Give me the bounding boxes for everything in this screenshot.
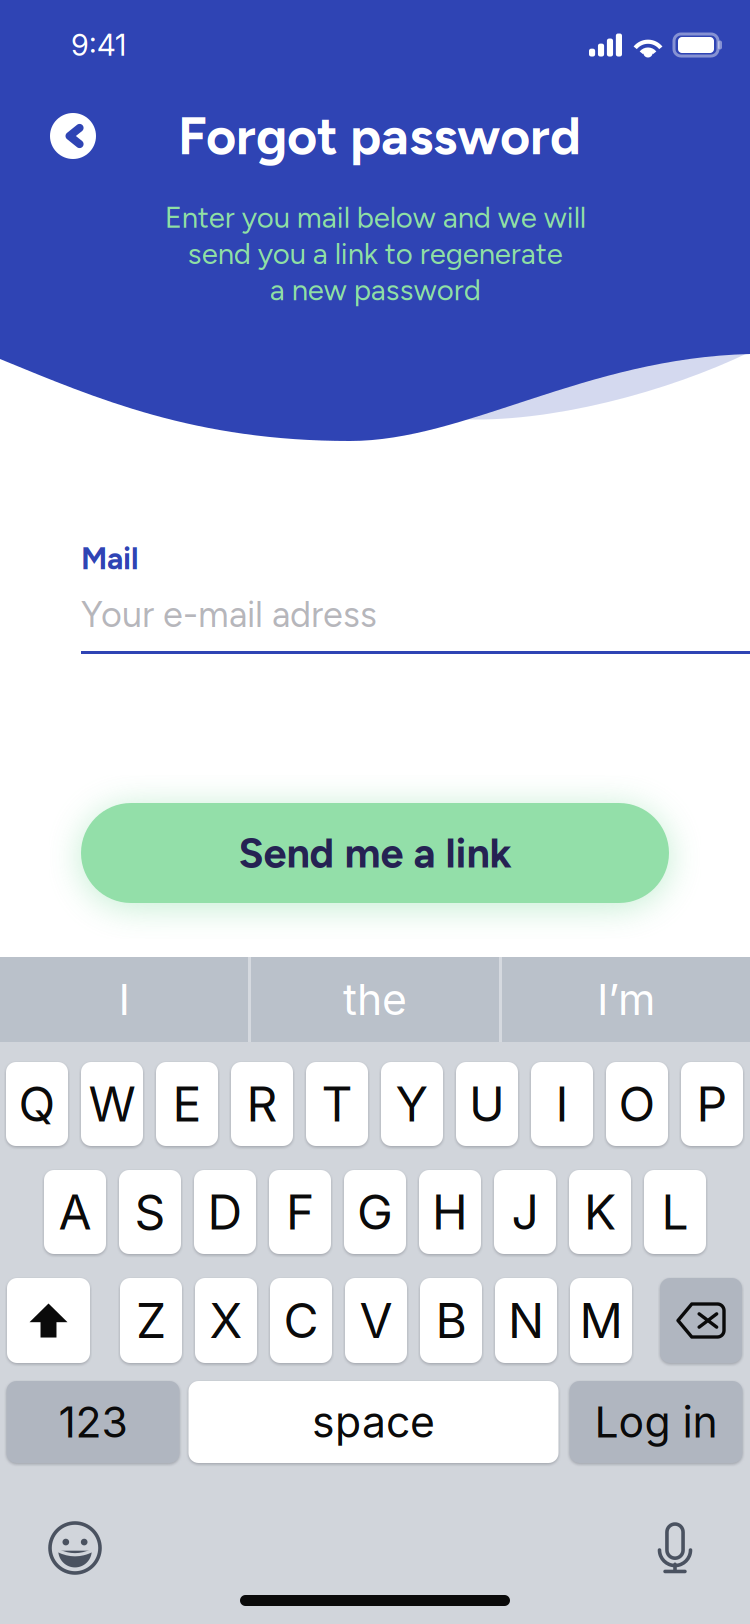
staticText: V (359, 1291, 392, 1350)
staticText: P (696, 1075, 727, 1133)
staticText: O (618, 1075, 655, 1133)
button[interactable]: T (306, 1062, 368, 1146)
staticText: 123 (58, 1396, 127, 1448)
button[interactable]: L (644, 1170, 706, 1254)
button[interactable]: V (345, 1278, 407, 1363)
button[interactable]: F (269, 1170, 331, 1254)
staticText: Enter you mail below and we will send yo… (164, 200, 585, 308)
staticText: F (286, 1183, 314, 1241)
staticText: space (312, 1396, 435, 1448)
button[interactable]: Dictate (653, 1521, 697, 1575)
button[interactable]: space (188, 1381, 558, 1463)
staticText: Q (18, 1075, 55, 1133)
button[interactable]: R (231, 1062, 293, 1146)
staticText: Z (136, 1291, 166, 1350)
staticText: A (58, 1183, 91, 1241)
staticText: I (555, 1075, 568, 1133)
staticText: H (432, 1183, 468, 1241)
button[interactable]: X (195, 1278, 257, 1363)
staticText: Mail (81, 540, 139, 577)
button[interactable]: I (531, 1062, 593, 1146)
button[interactable]: D (194, 1170, 256, 1254)
button[interactable]: Back (50, 113, 96, 159)
staticText: Log in (594, 1396, 717, 1448)
staticText: M (579, 1291, 622, 1350)
button[interactable]: Delete (660, 1278, 742, 1363)
staticText: Send me a link (238, 828, 511, 878)
button[interactable]: Q (6, 1062, 68, 1146)
staticText: 9:41 (71, 27, 126, 63)
staticText: the (343, 974, 407, 1025)
staticText: K (584, 1183, 616, 1241)
staticText: I (118, 974, 129, 1025)
button[interactable]: Log in (569, 1381, 742, 1463)
staticText: T (321, 1075, 352, 1133)
staticText: S (134, 1183, 165, 1241)
button[interactable]: B (420, 1278, 482, 1363)
staticText: R (246, 1075, 277, 1133)
staticText: B (435, 1291, 466, 1350)
button[interactable]: the (251, 957, 499, 1042)
button[interactable]: Send me a link (81, 803, 669, 903)
staticText: C (283, 1291, 318, 1350)
button[interactable]: M (570, 1278, 632, 1363)
button[interactable]: 123 (6, 1381, 179, 1463)
button[interactable]: I’m (502, 957, 750, 1042)
staticText: Your e-mail adress (81, 593, 377, 636)
button[interactable]: K (569, 1170, 631, 1254)
button[interactable]: U (456, 1062, 518, 1146)
button[interactable]: W (81, 1062, 143, 1146)
staticText: Y (395, 1075, 428, 1133)
staticText: E (172, 1075, 201, 1133)
button[interactable]: P (681, 1062, 743, 1146)
button[interactable]: G (344, 1170, 406, 1254)
staticText: I’m (597, 974, 655, 1025)
staticText: Forgot password (178, 105, 581, 167)
button[interactable]: Z (120, 1278, 182, 1363)
button[interactable]: H (419, 1170, 481, 1254)
button[interactable]: A (44, 1170, 106, 1254)
staticText: X (209, 1291, 242, 1350)
button[interactable]: C (270, 1278, 332, 1363)
button[interactable]: S (119, 1170, 181, 1254)
button[interactable]: I (0, 957, 248, 1042)
button[interactable]: Emoji (48, 1521, 102, 1575)
staticText: J (511, 1183, 538, 1241)
staticText: L (661, 1183, 688, 1241)
button[interactable]: O (606, 1062, 668, 1146)
staticText: U (469, 1075, 505, 1133)
button[interactable]: Y (381, 1062, 443, 1146)
staticText: W (88, 1075, 135, 1133)
staticText: D (207, 1183, 242, 1241)
button[interactable]: E (156, 1062, 218, 1146)
button[interactable]: N (495, 1278, 557, 1363)
staticText: N (508, 1291, 544, 1350)
button[interactable]: Shift (7, 1278, 90, 1363)
button[interactable]: J (494, 1170, 556, 1254)
staticText: G (357, 1183, 393, 1241)
